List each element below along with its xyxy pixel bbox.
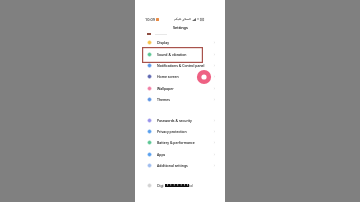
staticText: Themes xyxy=(157,97,171,102)
staticText: السلام عليكم xyxy=(174,17,191,21)
staticText: Settings xyxy=(173,25,188,30)
button[interactable]: Battery & performance xyxy=(135,137,225,148)
staticText: Passwords & security xyxy=(157,118,192,123)
staticText: Home screen xyxy=(157,74,179,79)
staticText: Display xyxy=(157,40,169,45)
staticText: 10:09 xyxy=(145,17,155,22)
staticText: Display xyxy=(157,40,169,45)
staticText: tal xyxy=(189,183,194,188)
button[interactable]: Privacy protection xyxy=(135,126,225,137)
button[interactable]: Apps xyxy=(135,149,225,160)
staticText: Battery & performance xyxy=(157,140,195,145)
staticText: Additional settings xyxy=(157,163,188,168)
staticText: Wallpaper xyxy=(157,86,174,91)
staticText: Battery & performance xyxy=(157,140,195,145)
staticText: Digi xyxy=(157,183,164,188)
staticText: 10:09 xyxy=(145,17,155,22)
staticText: Home screen xyxy=(157,74,179,79)
staticText: Apps xyxy=(157,152,166,157)
staticText: Additional settings xyxy=(157,163,188,168)
staticText: السلام عليكم xyxy=(174,17,191,21)
button[interactable]: Display xyxy=(135,37,225,48)
staticText: Privacy protection xyxy=(157,129,187,134)
staticText: Wallpaper xyxy=(157,86,174,91)
staticText: Digi xyxy=(157,183,164,188)
staticText: Privacy protection xyxy=(157,129,187,134)
button[interactable]: Digital Wellbeing & parental controls xyxy=(135,180,225,191)
button[interactable]: Passwords & security xyxy=(135,115,225,126)
staticText: Themes xyxy=(157,97,171,102)
staticText: Sound & vibration xyxy=(157,52,187,57)
button[interactable]: Sound & vibration xyxy=(135,49,225,60)
button[interactable]: Wallpaper xyxy=(135,83,225,94)
button[interactable]: Additional settings xyxy=(135,160,225,171)
button[interactable]: Themes xyxy=(135,94,225,105)
staticText: Apps xyxy=(157,152,166,157)
staticText: Passwords & security xyxy=(157,118,192,123)
other: Tap indicator xyxy=(197,70,211,84)
staticText: Sound & vibration xyxy=(157,52,187,57)
staticText: tal xyxy=(189,183,194,188)
button[interactable]: Home screen xyxy=(135,71,225,82)
staticText: Notifications & Control panel xyxy=(157,63,205,68)
button[interactable]: Search settings xyxy=(147,31,225,37)
staticText: Notifications & Control panel xyxy=(157,63,205,68)
staticText: Settings xyxy=(173,25,188,30)
button[interactable]: Notifications & Control panel xyxy=(135,60,225,71)
